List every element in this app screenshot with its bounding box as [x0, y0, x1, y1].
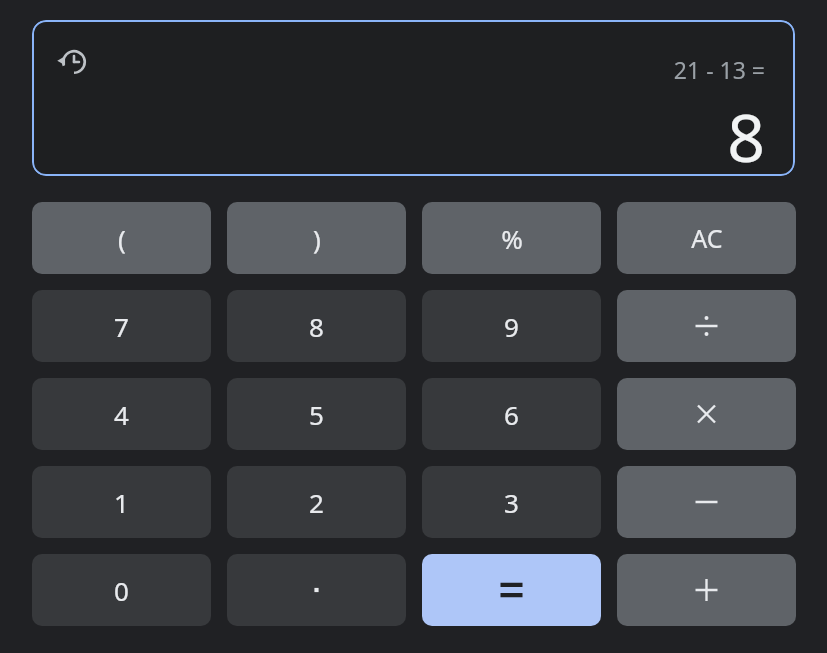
- staticText: 8: [727, 91, 765, 176]
- staticText: 8: [309, 309, 324, 344]
- button[interactable]: AC: [617, 202, 796, 274]
- button[interactable]: 6: [422, 378, 601, 450]
- staticText: 7: [114, 309, 129, 344]
- staticText: 6: [504, 397, 519, 432]
- button[interactable]: ): [227, 202, 406, 274]
- button[interactable]: 3: [422, 466, 601, 538]
- button[interactable]: Multiply: [617, 378, 796, 450]
- button[interactable]: Equals: [422, 554, 601, 626]
- staticText: 4: [114, 397, 129, 432]
- staticText: 3: [504, 485, 519, 520]
- staticText: %: [501, 221, 523, 256]
- button[interactable]: 0: [32, 554, 211, 626]
- button[interactable]: 4: [32, 378, 211, 450]
- button[interactable]: 5: [227, 378, 406, 450]
- button[interactable]: Plus: [617, 554, 796, 626]
- button[interactable]: 2: [227, 466, 406, 538]
- button[interactable]: Divide: [617, 290, 796, 362]
- staticText: 21 - 13 =: [673, 54, 765, 85]
- button[interactable]: 8: [227, 290, 406, 362]
- staticText: ): [313, 221, 321, 256]
- button[interactable]: (: [32, 202, 211, 274]
- button[interactable]: Decimal point: [227, 554, 406, 626]
- staticText: (: [118, 221, 126, 256]
- staticText: 9: [504, 309, 519, 344]
- button[interactable]: 9: [422, 290, 601, 362]
- button[interactable]: History: [56, 44, 92, 80]
- button[interactable]: Minus: [617, 466, 796, 538]
- staticText: 0: [114, 573, 129, 608]
- staticText: 2: [309, 485, 324, 520]
- button[interactable]: %: [422, 202, 601, 274]
- button[interactable]: 1: [32, 466, 211, 538]
- staticText: 5: [309, 397, 324, 432]
- button[interactable]: 7: [32, 290, 211, 362]
- staticText: AC: [691, 221, 723, 255]
- staticText: 1: [114, 485, 129, 520]
